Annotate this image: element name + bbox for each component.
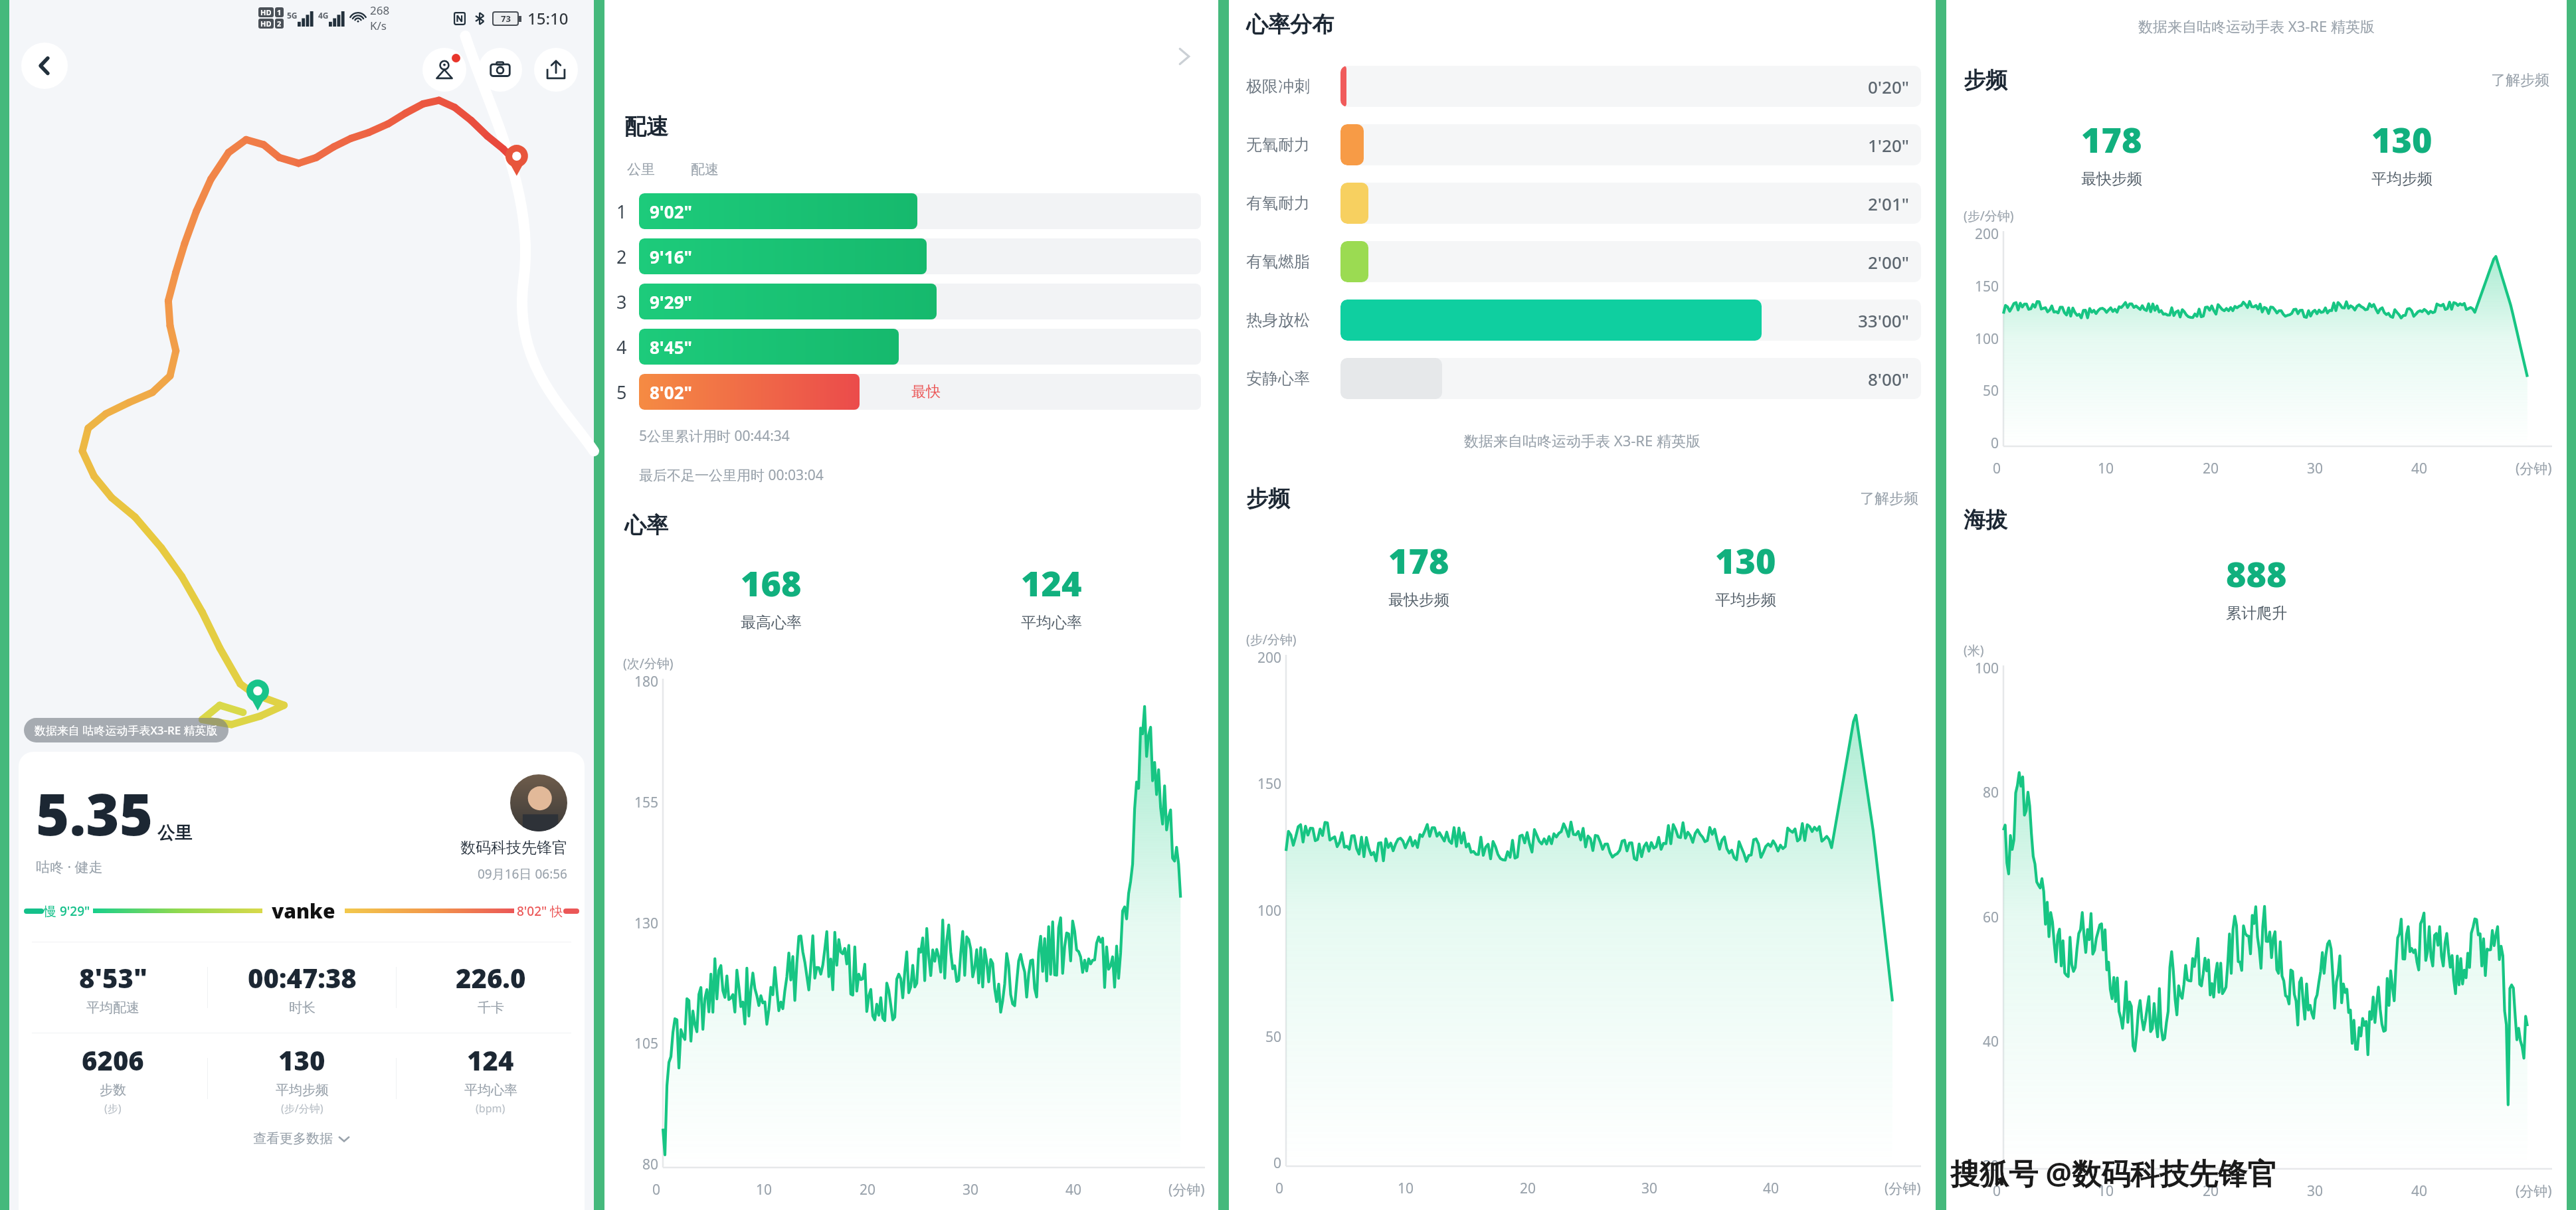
staticText: 20 (2203, 1181, 2219, 1201)
staticText: 有氧耐力 (1246, 193, 1331, 213)
staticText: (步/分钟) (1246, 631, 1297, 648)
staticText: 数据来自 咕咚运动手表X3-RE 精英版 (35, 723, 218, 738)
staticText: 10 (756, 1180, 773, 1199)
button[interactable] (510, 774, 567, 831)
staticText: 50 (1265, 1027, 1282, 1047)
staticText: 步数 (100, 1082, 126, 1098)
staticText: 数据来自咕咚运动手表 X3-RE 精英版 (1946, 16, 2567, 36)
staticText: 3 (616, 290, 627, 314)
button[interactable]: 4 (604, 324, 1218, 369)
staticText: vanke (272, 897, 335, 924)
button[interactable]: Camera (478, 48, 522, 92)
staticText: 73 (501, 13, 511, 25)
button[interactable]: 2 (604, 234, 1218, 279)
staticText: 平均心率 (1021, 613, 1082, 632)
staticText: 30 (963, 1180, 979, 1199)
staticText: 10 (2098, 459, 2114, 478)
button[interactable]: 热身放松 (1229, 291, 1936, 349)
staticText: 50 (1983, 381, 1999, 400)
staticText: 20 (2203, 459, 2219, 478)
staticText: 平均步频 (1715, 590, 1776, 610)
button[interactable]: 极限冲刺 (1229, 57, 1936, 116)
button[interactable]: 了解步频 (2491, 71, 2549, 90)
staticText: 155 (634, 793, 659, 812)
button[interactable]: 1 (604, 189, 1218, 234)
staticText: 平均配速 (86, 999, 139, 1016)
staticText: 最快 (911, 383, 941, 401)
staticText: 无氧耐力 (1246, 135, 1331, 155)
staticText: 0'20" (1868, 75, 1909, 98)
button[interactable]: 5 (604, 369, 1218, 414)
staticText: 168 (741, 559, 802, 606)
staticText: 0 (652, 1180, 661, 1199)
staticText: 0 (1991, 434, 1999, 453)
staticText: 2 (616, 244, 627, 269)
staticText: 0 (1993, 459, 2001, 478)
staticText: 千卡 (478, 999, 504, 1016)
button[interactable]: 有氧燃脂 (1229, 232, 1936, 291)
staticText: 平均步频 (2371, 169, 2433, 189)
staticText: 40 (1983, 1032, 1999, 1051)
button[interactable]: 了解步频 (1860, 489, 1918, 508)
staticText: K/s (370, 18, 387, 33)
staticText: 30 (2307, 1181, 2324, 1201)
staticText: 100 (1975, 329, 1999, 349)
staticText: 0 (1273, 1154, 1282, 1173)
staticText: 124 (1021, 559, 1082, 606)
button[interactable]: Map points (422, 48, 466, 92)
staticText: 9'29" (650, 290, 692, 313)
staticText: 数据来自咕咚运动手表 X3-RE 精英版 (1229, 430, 1936, 450)
staticText: (步/分钟) (1964, 207, 2014, 224)
staticText: 心率 (624, 511, 668, 539)
staticText: 40 (1065, 1180, 1082, 1199)
staticText: 20 (860, 1180, 876, 1199)
button[interactable]: Back (21, 43, 68, 89)
button[interactable]: 查看更多数据 (19, 1124, 585, 1154)
staticText: (米) (1964, 642, 1984, 659)
staticText: 8'02" 快 (517, 903, 563, 920)
staticText: 105 (634, 1034, 659, 1053)
staticText: 8'45" (650, 335, 692, 359)
staticText: 150 (1975, 277, 1999, 296)
staticText: 30 (2307, 459, 2324, 478)
staticText: 8'53" (79, 960, 147, 995)
button[interactable]: 安静心率 (1229, 349, 1936, 408)
staticText: 130 (1715, 537, 1776, 584)
staticText: 100 (1975, 659, 1999, 678)
staticText: HD (260, 19, 272, 29)
staticText: 1'20" (1868, 133, 1909, 157)
staticText: (步/分钟) (281, 1101, 323, 1116)
staticText: 平均心率 (464, 1082, 517, 1098)
staticText: 海拔 (1964, 506, 2007, 534)
button[interactable]: Share (534, 48, 578, 92)
staticText: 1 (616, 199, 627, 224)
staticText: 0 (1275, 1179, 1284, 1198)
staticText: 130 (634, 914, 659, 933)
staticText: 数码科技先锋官 (460, 838, 567, 857)
staticText: 6206 (82, 1042, 144, 1078)
staticText: 888 (2226, 550, 2287, 597)
staticText: 步频 (1246, 485, 1290, 513)
staticText: 配速 (624, 113, 668, 141)
button[interactable]: 3 (604, 279, 1218, 324)
button[interactable]: 无氧耐力 (1229, 116, 1936, 174)
staticText: 60 (1983, 908, 1999, 927)
staticText: 慢 9'29" (44, 903, 90, 920)
staticText: 2'00" (1868, 250, 1909, 274)
staticText: 80 (1983, 783, 1999, 802)
staticText: 有氧燃脂 (1246, 252, 1331, 272)
staticText: 40 (2411, 459, 2428, 478)
button[interactable]: 有氧耐力 (1229, 174, 1936, 232)
staticText: 268 (370, 3, 390, 18)
staticText: 150 (1257, 774, 1282, 794)
staticText: 130 (2371, 116, 2433, 163)
staticText: 2 (277, 19, 282, 29)
staticText: 10 (1398, 1179, 1414, 1198)
staticText: 时长 (289, 999, 316, 1016)
staticText: 极限冲刺 (1246, 76, 1331, 96)
staticText: (bpm) (476, 1101, 506, 1116)
staticText: 心率分布 (1246, 11, 1334, 39)
staticText: (分钟) (1885, 1179, 1921, 1198)
staticText: 10 (2098, 1181, 2114, 1201)
staticText: 33'00" (1858, 309, 1909, 332)
